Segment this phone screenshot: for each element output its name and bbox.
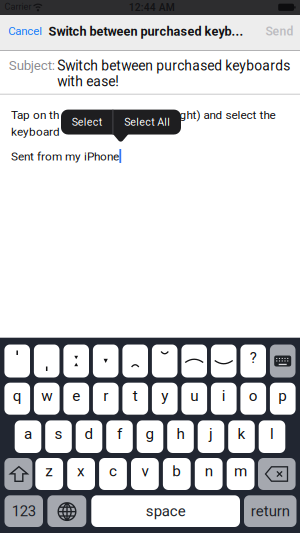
staticText: b (172, 462, 181, 480)
button[interactable]: Accent 8 (211, 344, 236, 377)
staticText: j (209, 425, 213, 442)
button[interactable]: t (122, 383, 148, 415)
button[interactable]: Accent 4 (93, 344, 118, 377)
button[interactable]: j (198, 420, 224, 453)
staticText: q (13, 387, 22, 404)
button[interactable]: Accent 5 (122, 344, 148, 377)
button[interactable]: z (35, 458, 63, 490)
button[interactable]: e (63, 383, 89, 415)
button[interactable]: Accent 1 (4, 344, 30, 377)
button[interactable]: Accent 7 (181, 344, 207, 377)
staticText: l (270, 425, 274, 442)
staticText: Carrier (4, 1, 31, 12)
staticText: Send (265, 24, 293, 38)
staticText: c (109, 462, 117, 480)
button[interactable]: y (152, 383, 178, 415)
button[interactable]: h (167, 420, 194, 453)
staticText: o (249, 387, 258, 404)
staticText: v (141, 462, 148, 480)
staticText: Cancel (8, 24, 42, 38)
button[interactable]: c (99, 458, 127, 490)
staticText: d (84, 425, 93, 442)
button[interactable]: Select (61, 110, 112, 134)
button[interactable]: space (91, 495, 240, 527)
staticText: Subject: (9, 58, 55, 73)
staticText: Select All (124, 116, 170, 128)
staticText: u (190, 387, 198, 404)
button[interactable]: p (270, 383, 296, 415)
button[interactable]: l (259, 420, 285, 453)
button[interactable]: Accent 9 (240, 344, 266, 377)
button[interactable]: u (181, 383, 207, 415)
staticText: ght) and select the (179, 108, 275, 122)
button[interactable]: q (4, 383, 30, 415)
staticText: t (133, 387, 138, 404)
button[interactable]: n (195, 458, 223, 490)
button[interactable]: return (244, 495, 296, 527)
staticText: s (54, 425, 62, 442)
staticText: 12:44 AM (129, 1, 175, 13)
button[interactable]: s (45, 420, 72, 453)
staticText: n (205, 462, 213, 480)
button[interactable]: Dismiss Keyboard (270, 344, 295, 377)
button[interactable]: f (106, 420, 133, 453)
button[interactable]: i (211, 383, 237, 415)
staticText: x (77, 462, 85, 480)
button[interactable]: Cancel (8, 24, 42, 38)
button[interactable]: o (240, 383, 266, 415)
button[interactable]: Accent 6 (152, 344, 177, 377)
staticText: z (45, 462, 53, 480)
staticText: Sent from my iPhone (11, 150, 119, 163)
staticText: Select (72, 116, 102, 128)
button[interactable]: Accent 2 (34, 344, 59, 377)
button[interactable]: m (227, 458, 254, 490)
button[interactable]: Next keyboard (47, 495, 86, 527)
staticText: Switch between purchased keyb... (48, 24, 243, 39)
button[interactable]: a (15, 420, 41, 453)
button[interactable]: k (228, 420, 255, 453)
staticText: r (103, 387, 108, 404)
staticText: g (145, 425, 154, 442)
staticText: k (237, 425, 245, 442)
button[interactable]: d (76, 420, 102, 453)
staticText: keyboard (11, 125, 60, 138)
staticText: e (72, 387, 80, 404)
staticText: i (222, 387, 226, 404)
staticText: space (146, 503, 186, 520)
button[interactable]: Delete (258, 458, 296, 490)
button[interactable]: Send (265, 24, 293, 38)
staticText: return (251, 503, 290, 520)
staticText: ? (250, 349, 257, 367)
button[interactable]: Shift (4, 458, 32, 490)
staticText: with ease! (57, 74, 119, 89)
staticText: f (117, 425, 122, 442)
staticText: y (161, 387, 168, 404)
button[interactable]: w (34, 383, 60, 415)
button[interactable]: v (131, 458, 159, 490)
button[interactable]: Accent 3 (63, 344, 89, 377)
staticText: 123 (12, 503, 36, 520)
staticText: p (278, 387, 287, 404)
staticText: a (24, 425, 32, 442)
staticText: m (234, 462, 247, 480)
staticText: Switch between purchased keyboards (57, 58, 290, 74)
button[interactable]: x (67, 458, 95, 490)
staticText: w (41, 387, 52, 404)
staticText: h (176, 425, 184, 442)
button[interactable]: b (163, 458, 191, 490)
button[interactable]: g (137, 420, 163, 453)
staticText: Tap on th (11, 108, 59, 122)
button[interactable]: Select All (113, 110, 181, 134)
button[interactable]: 123 (4, 495, 43, 527)
button[interactable]: r (93, 383, 119, 415)
